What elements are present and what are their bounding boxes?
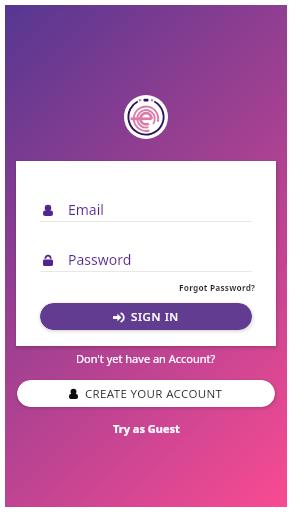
staticText: Password (68, 250, 132, 269)
staticText: CREATE YOUR ACCOUNT (85, 386, 223, 402)
button[interactable]: Forgot Password? (179, 282, 256, 293)
staticText: Don't yet have an Account? (76, 351, 216, 366)
button[interactable]: SIGN IN (40, 303, 252, 330)
staticText: SIGN IN (131, 309, 179, 325)
staticText: Email (68, 200, 104, 219)
staticText: Try as Guest (113, 421, 180, 436)
staticText: Forgot Password? (179, 282, 256, 293)
button[interactable]: CREATE YOUR ACCOUNT (17, 380, 275, 407)
button[interactable]: Try as Guest (113, 421, 180, 436)
